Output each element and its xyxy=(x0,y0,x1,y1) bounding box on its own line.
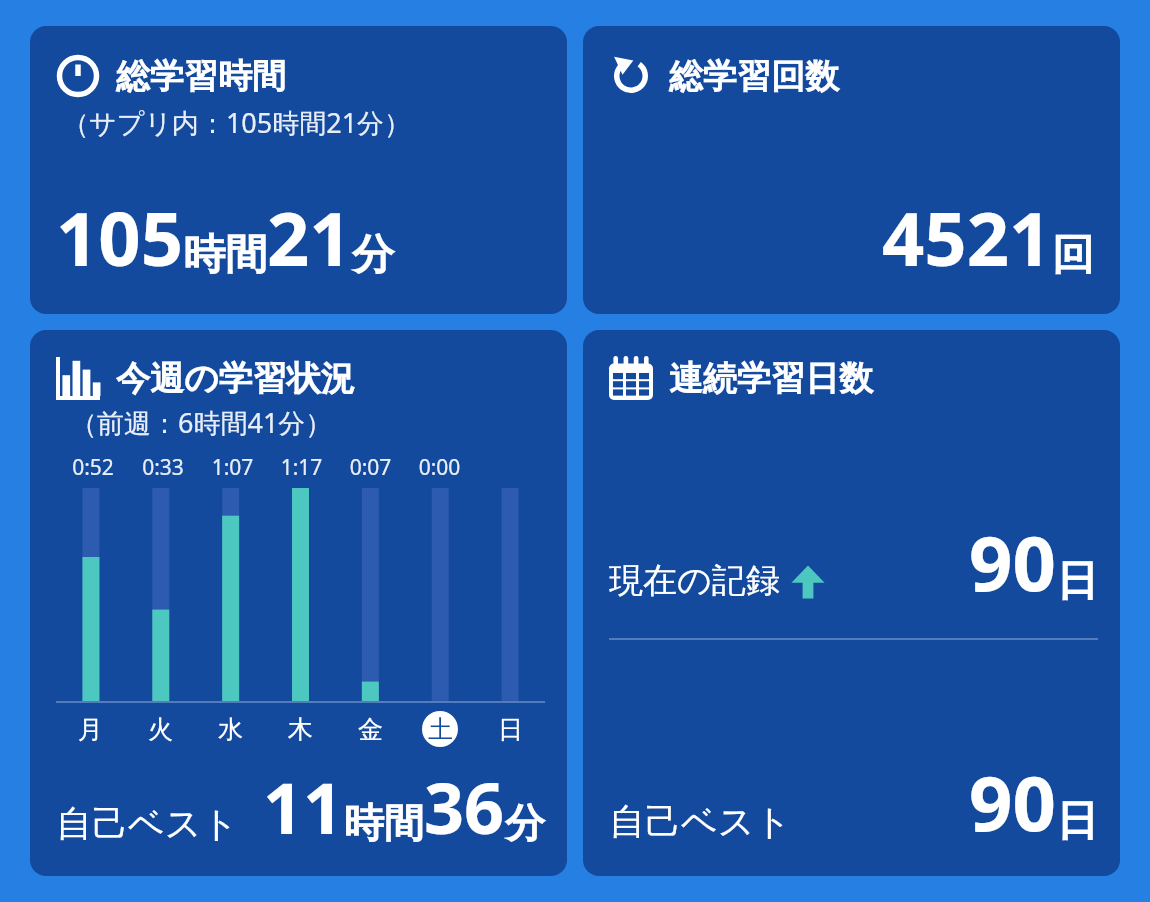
staticText: 火 xyxy=(148,714,173,745)
staticText: 11 xyxy=(263,759,344,854)
staticText: 0:52 xyxy=(58,453,128,482)
staticText: 1:07 xyxy=(198,453,267,482)
staticText: 36 xyxy=(424,759,505,854)
staticText: （サプリ内：105時間21分） xyxy=(62,104,549,141)
staticText: 90 xyxy=(969,750,1056,854)
staticText: 連続学習日数 xyxy=(669,357,873,400)
button[interactable]: 連続学習日数 xyxy=(583,330,1120,876)
staticText: 0:33 xyxy=(128,453,198,482)
staticText: 21 xyxy=(267,187,352,288)
staticText: 時間 xyxy=(344,798,424,848)
staticText: 4521 xyxy=(882,187,1052,288)
staticText: 月 xyxy=(78,714,103,745)
staticText: 水 xyxy=(218,714,243,745)
staticText: 時間 xyxy=(183,229,267,282)
staticText: 分 xyxy=(505,798,545,848)
staticText: 土 xyxy=(428,714,453,745)
staticText: 105 xyxy=(56,187,183,288)
staticText: 現在の記録 xyxy=(609,559,780,602)
staticText: 日 xyxy=(1056,555,1098,608)
staticText: 総学習回数 xyxy=(669,55,839,98)
staticText: （前週：6時間41分） xyxy=(70,404,545,441)
staticText: 金 xyxy=(358,714,383,745)
staticText: 分 xyxy=(352,229,394,282)
button[interactable]: 今週の学習状況 xyxy=(30,330,567,876)
button[interactable]: 総学習時間 xyxy=(30,26,567,314)
staticText: 0:00 xyxy=(405,453,474,482)
staticText: 今週の学習状況 xyxy=(116,357,355,400)
staticText: 90 xyxy=(969,510,1056,614)
button[interactable]: 総学習回数 xyxy=(583,26,1120,314)
staticText: 0:07 xyxy=(336,453,405,482)
staticText: 総学習時間 xyxy=(116,55,286,98)
staticText: 木 xyxy=(288,714,313,745)
staticText: 回 xyxy=(1052,229,1094,282)
staticText: 日 xyxy=(1056,795,1098,848)
staticText: 自己ベスト xyxy=(609,799,792,844)
staticText: 自己ベスト xyxy=(56,801,239,846)
staticText: 日 xyxy=(498,714,523,745)
staticText: 1:17 xyxy=(267,453,336,482)
